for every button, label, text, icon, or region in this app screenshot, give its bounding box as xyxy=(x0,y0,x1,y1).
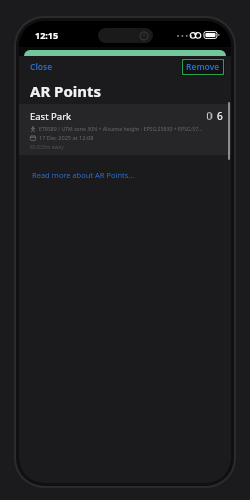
staticText: 12:15 xyxy=(35,29,59,41)
staticText: East Park xyxy=(30,110,206,123)
staticText: 6 xyxy=(217,109,223,123)
button[interactable]: Remove xyxy=(181,58,225,76)
staticText: 17 Dec 2025 at 12:08 xyxy=(39,134,94,142)
staticText: Read more about AR Points... xyxy=(32,170,135,180)
staticText: Close xyxy=(30,61,53,73)
staticText: 83,833m away xyxy=(30,144,64,151)
button[interactable]: Close xyxy=(26,58,57,76)
button[interactable]: Read more about AR Points... xyxy=(30,167,137,183)
button[interactable]: East Park xyxy=(19,104,231,155)
staticText: AR Points xyxy=(30,81,102,101)
staticText: Remove xyxy=(186,61,220,73)
staticText: ETRS89 / UTM zone 30N + Alicante height … xyxy=(39,125,203,132)
